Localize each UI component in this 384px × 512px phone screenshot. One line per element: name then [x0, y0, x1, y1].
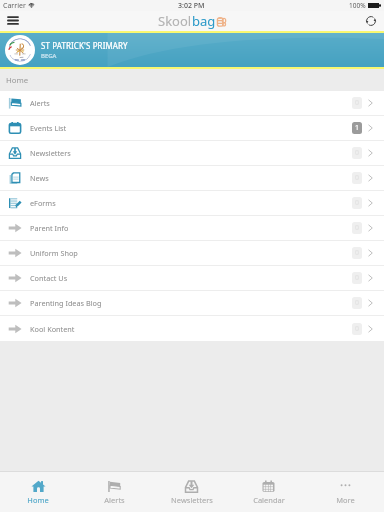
staticText: eForms: [30, 198, 56, 208]
staticText: 0: [355, 273, 360, 283]
staticText: Newsletters: [171, 495, 213, 505]
button[interactable]: Newsletters: [153, 472, 230, 512]
staticText: 0: [355, 173, 360, 183]
staticText: ST PATRICK'S PRIMARY: [41, 40, 128, 51]
staticText: Calendar: [253, 495, 285, 505]
staticText: Skool: [158, 12, 192, 30]
button[interactable]: Events List: [0, 116, 384, 140]
button[interactable]: More: [307, 472, 384, 512]
staticText: 100%: [349, 1, 366, 10]
button[interactable]: eForms: [0, 191, 384, 215]
staticText: Home: [27, 495, 49, 505]
staticText: 0: [355, 324, 360, 334]
staticText: 1: [355, 123, 360, 133]
staticText: Alerts: [30, 98, 50, 108]
staticText: News: [30, 173, 49, 183]
button[interactable]: Kool Kontent: [0, 316, 384, 341]
staticText: Parent Info: [30, 223, 69, 233]
staticText: Uniform Shop: [30, 248, 78, 258]
staticText: Contact Us: [30, 273, 68, 283]
staticText: Parenting Ideas Blog: [30, 298, 102, 308]
staticText: 0: [355, 223, 360, 233]
staticText: bag: [192, 12, 216, 30]
staticText: Carrier: [3, 1, 26, 11]
staticText: More: [336, 495, 355, 505]
button[interactable]: Parent Info: [0, 216, 384, 240]
staticText: Home: [6, 75, 29, 86]
staticText: 0: [355, 148, 360, 158]
button[interactable]: Newsletters: [0, 141, 384, 165]
button[interactable]: News: [0, 166, 384, 190]
button[interactable]: Alerts: [0, 91, 384, 115]
button[interactable]: Menu: [0, 11, 26, 31]
button[interactable]: Alerts: [76, 472, 153, 512]
button[interactable]: Refresh: [358, 11, 384, 31]
staticText: 0: [355, 198, 360, 208]
staticText: Newsletters: [30, 148, 71, 158]
button[interactable]: Uniform Shop: [0, 241, 384, 265]
staticText: Alerts: [104, 495, 125, 505]
staticText: 0: [355, 248, 360, 258]
staticText: Events List: [30, 123, 67, 133]
staticText: 0: [355, 98, 360, 108]
staticText: BEGA: [41, 52, 57, 60]
staticText: 0: [355, 298, 360, 308]
button[interactable]: Contact Us: [0, 266, 384, 290]
button[interactable]: Parenting Ideas Blog: [0, 291, 384, 315]
staticText: 3:02 PM: [178, 1, 205, 11]
staticText: Kool Kontent: [30, 324, 75, 334]
button[interactable]: Calendar: [230, 472, 307, 512]
button[interactable]: Home: [0, 472, 76, 512]
